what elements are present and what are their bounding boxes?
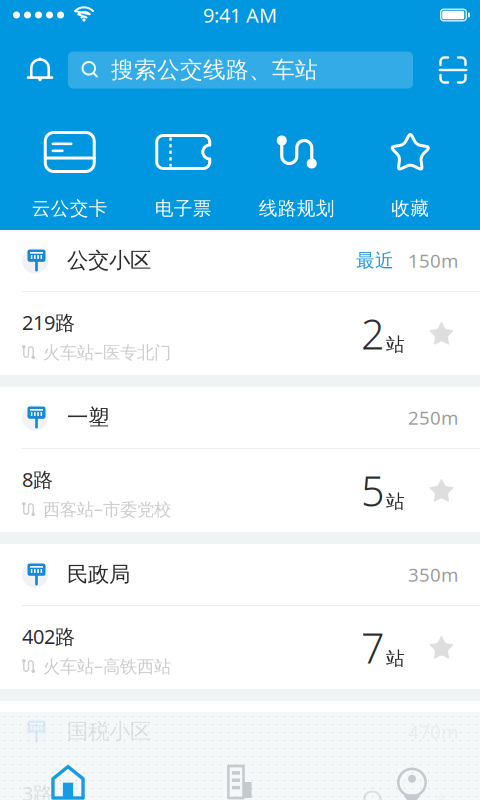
staticText: 350m — [408, 562, 458, 587]
staticText: 云公交卡 — [32, 197, 108, 220]
staticText: 8路 — [22, 466, 53, 493]
staticText: 国税小区 — [67, 718, 151, 745]
button[interactable]: 云公交卡 — [13, 131, 126, 220]
staticText: 火车站–医专北门 — [43, 341, 171, 364]
button[interactable]: 公交小区 — [0, 230, 480, 291]
staticText: 公交小区 — [67, 247, 151, 274]
button[interactable]: 收藏 — [353, 131, 467, 220]
button[interactable]: 一塑 — [0, 387, 480, 448]
staticText: 7 — [361, 620, 385, 675]
staticText: 402路 — [22, 623, 75, 650]
staticText: 5 — [361, 463, 385, 518]
staticText: 线路规划 — [259, 197, 335, 220]
staticText: 219路 — [22, 309, 75, 336]
button[interactable]: 3路 — [0, 763, 480, 800]
button[interactable]: 线路规划 — [240, 131, 353, 220]
button[interactable]: 民政局 — [0, 544, 480, 605]
staticText: 收藏 — [391, 197, 429, 220]
button[interactable]: 线路 — [136, 710, 344, 800]
button[interactable]: 扫一扫 — [426, 51, 480, 89]
button[interactable]: 402路 — [0, 606, 480, 689]
staticText: 最近 — [356, 249, 394, 272]
staticText: 470m — [408, 719, 458, 744]
staticText: 150m — [408, 248, 458, 273]
button[interactable]: 通知 — [12, 51, 68, 89]
staticText: 9 — [361, 777, 385, 800]
staticText: 站 — [386, 490, 405, 513]
staticText: 西客站–市委党校 — [43, 498, 171, 521]
staticText: 电子票 — [155, 197, 212, 220]
staticText: 火车站–高铁西站 — [43, 655, 171, 678]
button[interactable]: 首页 — [0, 710, 136, 800]
staticText: 站 — [386, 647, 405, 670]
staticText: 民政局 — [67, 561, 130, 588]
button[interactable]: 我的 — [344, 710, 480, 800]
button[interactable]: 219路 — [0, 292, 480, 375]
button[interactable]: 8路 — [0, 449, 480, 532]
staticText: 3路 — [22, 780, 53, 800]
staticText: 2 — [361, 306, 385, 361]
staticText: 一塑 — [67, 404, 109, 431]
staticText: 9:41 AM — [203, 2, 277, 28]
staticText: 站 — [386, 333, 405, 356]
button[interactable]: 电子票 — [126, 131, 240, 220]
button[interactable]: 国税小区 — [0, 701, 480, 762]
staticText: 搜索公交线路、车站 — [111, 56, 318, 84]
staticText: 250m — [408, 405, 458, 430]
